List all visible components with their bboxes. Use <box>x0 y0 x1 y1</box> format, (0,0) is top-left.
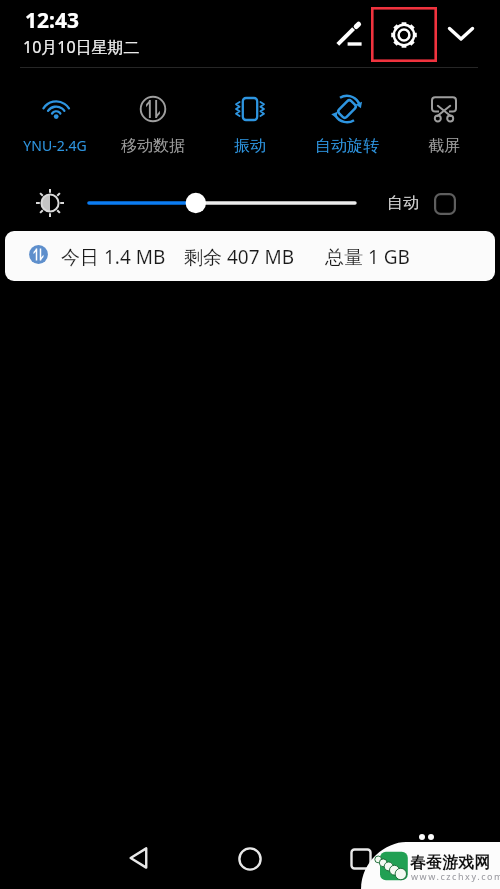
staticText: 春蚕游戏网 <box>410 853 490 873</box>
button[interactable]: 自动 <box>381 186 463 220</box>
staticText: 10月10日星期二 <box>23 36 140 58</box>
button[interactable]: Edit <box>327 12 371 56</box>
staticText: YNU-2.4G <box>23 136 87 155</box>
button[interactable]: 自动旋转 <box>299 88 395 156</box>
staticText: 振动 <box>234 136 266 156</box>
staticText: 剩余 407 MB <box>184 244 295 270</box>
button[interactable]: 移动数据 <box>105 88 201 156</box>
button[interactable]: 今日 1.4 MB <box>5 231 495 281</box>
button[interactable]: Brightness <box>28 181 72 225</box>
button[interactable]: Recents <box>339 837 383 881</box>
button[interactable]: Back <box>118 836 162 880</box>
staticText: www.czchxy.com <box>411 870 500 882</box>
button[interactable]: Brightness slider <box>78 189 366 217</box>
staticText: 自动 <box>387 193 419 213</box>
button[interactable]: Home <box>228 837 272 881</box>
staticText: 12:43 <box>25 6 79 35</box>
button[interactable]: Settings <box>371 7 437 62</box>
button[interactable]: YNU-2.4G <box>7 88 103 156</box>
staticText: 今日 1.4 MB <box>61 244 166 270</box>
staticText: 移动数据 <box>121 136 185 156</box>
button[interactable]: 振动 <box>202 88 298 156</box>
staticText: 自动旋转 <box>315 136 379 156</box>
button[interactable]: 截屏 <box>396 88 492 156</box>
staticText: 截屏 <box>428 136 460 156</box>
staticText: 总量 1 GB <box>325 244 410 270</box>
button[interactable]: Expand <box>439 11 483 55</box>
